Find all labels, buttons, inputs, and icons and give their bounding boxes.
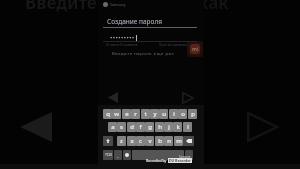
staticText: p: [191, 110, 195, 118]
staticText: a: [111, 123, 115, 131]
staticText: h: [158, 123, 162, 131]
button[interactable]: n: [164, 136, 173, 146]
button[interactable]: i: [169, 109, 178, 119]
staticText: r: [134, 110, 137, 118]
button[interactable]: m: [174, 136, 183, 146]
button[interactable]: b: [155, 136, 164, 146]
staticText: d: [130, 123, 134, 131]
staticText: l: [187, 123, 189, 131]
button[interactable]: Next: [247, 112, 278, 142]
staticText: •••••••••: [110, 34, 135, 42]
staticText: v: [148, 137, 152, 145]
staticText: u: [162, 110, 166, 118]
staticText: s: [120, 123, 123, 131]
staticText: .: [188, 153, 190, 158]
button[interactable]: Shift: [103, 136, 113, 146]
staticText: Не менее 8 символов: [106, 43, 138, 47]
button[interactable]: d: [127, 122, 136, 132]
button[interactable]: ,: [114, 150, 122, 160]
button[interactable]: o: [178, 109, 187, 119]
staticText: k: [176, 123, 180, 131]
staticText: ,: [117, 153, 119, 158]
button[interactable]: ?123: [103, 150, 113, 160]
staticText: как: [198, 0, 229, 14]
staticText: f: [139, 123, 142, 131]
staticText: m: [176, 137, 182, 145]
button[interactable]: e: [122, 109, 131, 119]
staticText: z: [120, 137, 123, 145]
button[interactable]: w: [112, 109, 121, 119]
staticText: b: [158, 137, 162, 145]
staticText: DU Recorder: [169, 158, 191, 163]
staticText: w: [114, 110, 119, 118]
staticText: mi: [192, 46, 199, 53]
button[interactable]: p: [188, 109, 197, 119]
staticText: Введите пароль еще раз: [112, 51, 174, 57]
button[interactable]: v: [145, 136, 154, 146]
staticText: g: [148, 123, 152, 131]
staticText: t: [144, 110, 147, 118]
button[interactable]: Emoji: [123, 150, 131, 160]
staticText: Введите: [25, 0, 97, 14]
button[interactable]: h: [155, 122, 164, 132]
button[interactable]: q: [103, 109, 112, 119]
staticText: i: [173, 110, 175, 118]
button[interactable]: x: [127, 136, 136, 146]
button[interactable]: s: [117, 122, 126, 132]
button[interactable]: c: [136, 136, 145, 146]
staticText: y: [153, 110, 157, 118]
button[interactable]: Rewind: [108, 92, 118, 103]
button[interactable]: j: [164, 122, 173, 132]
button[interactable]: Previous: [20, 112, 52, 142]
staticText: n: [167, 137, 171, 145]
button[interactable]: Forward: [182, 92, 194, 104]
button[interactable]: t: [141, 109, 150, 119]
button[interactable]: Space: [132, 150, 184, 160]
staticText: Простой надёжный: [159, 43, 188, 47]
button[interactable]: k: [173, 122, 182, 132]
staticText: Recorded by: [146, 158, 167, 163]
staticText: x: [130, 137, 134, 145]
button[interactable]: y: [150, 109, 159, 119]
staticText: q: [106, 110, 110, 118]
button[interactable]: u: [159, 109, 168, 119]
button[interactable]: g: [145, 122, 154, 132]
button[interactable]: l: [183, 122, 192, 132]
button[interactable]: r: [131, 109, 140, 119]
staticText: Samsung: [110, 2, 126, 7]
staticText: j: [168, 123, 170, 131]
button[interactable]: Backspace: [183, 136, 194, 146]
button[interactable]: a: [108, 122, 117, 132]
button[interactable]: .: [185, 150, 193, 160]
staticText: Samsung: [179, 155, 191, 159]
button[interactable]: f: [136, 122, 145, 132]
staticText: Создание пароля: [107, 17, 162, 26]
staticText: o: [181, 110, 185, 118]
staticText: e: [125, 110, 129, 118]
staticText: ?123: [105, 153, 112, 157]
staticText: c: [139, 137, 142, 145]
button[interactable]: z: [117, 136, 126, 146]
